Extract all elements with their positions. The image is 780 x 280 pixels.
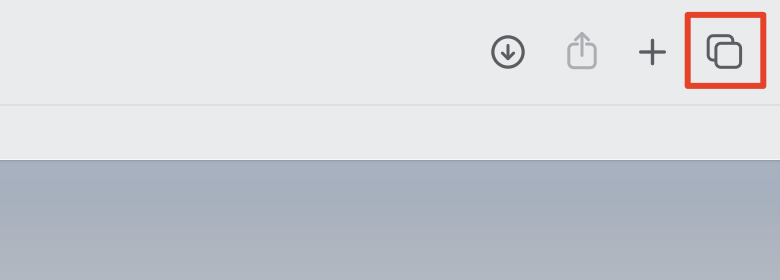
- button[interactable]: Downloads: [478, 0, 537, 104]
- button[interactable]: Show Tab Overview: [678, 0, 773, 104]
- button[interactable]: Share: [537, 0, 626, 104]
- button[interactable]: New Tab: [626, 0, 678, 104]
